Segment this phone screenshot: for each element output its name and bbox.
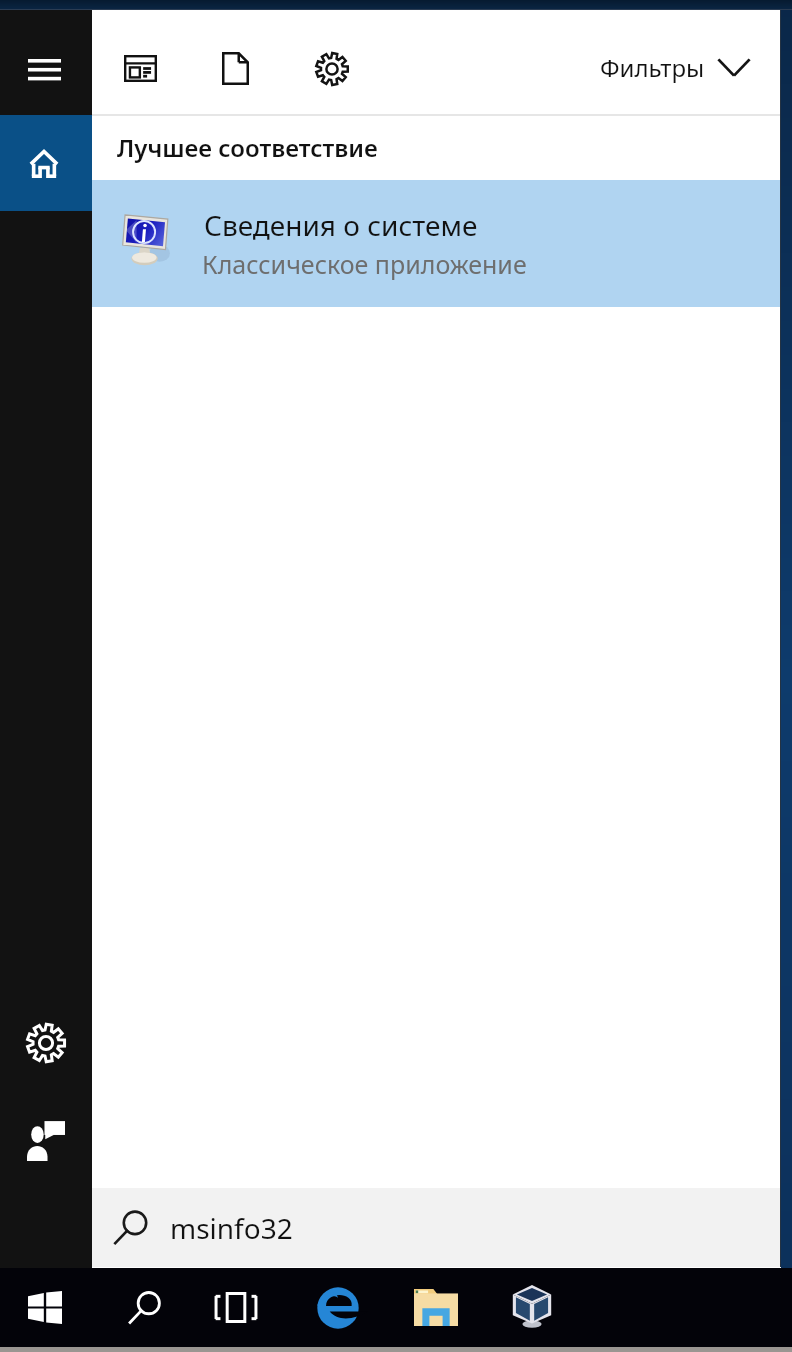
button[interactable]: Settings — [300, 29, 364, 109]
button[interactable]: Фильтры — [590, 10, 761, 114]
button[interactable]: Menu — [0, 10, 92, 114]
button[interactable]: File Explorer — [400, 1268, 472, 1347]
button[interactable]: Search — [110, 1268, 180, 1347]
button[interactable]: Settings — [0, 995, 92, 1091]
staticText: Лучшее соответствие — [117, 131, 378, 164]
button[interactable]: Microsoft Edge — [302, 1268, 374, 1347]
button[interactable]: Start — [10, 1268, 80, 1347]
button[interactable]: Home — [0, 115, 92, 211]
button[interactable]: Documents — [203, 28, 267, 108]
button[interactable]: VirtualBox — [496, 1268, 568, 1347]
button[interactable]: Task View — [200, 1268, 272, 1347]
staticText: Классическое приложение — [202, 247, 527, 281]
button[interactable]: Сведения о системе — [92, 180, 781, 307]
staticText: Фильтры — [600, 51, 705, 84]
button[interactable]: Feedback — [0, 1092, 92, 1188]
button[interactable]: Web — [108, 28, 172, 108]
staticText: msinfo32 — [170, 1209, 293, 1247]
staticText: Сведения о системе — [204, 206, 478, 244]
